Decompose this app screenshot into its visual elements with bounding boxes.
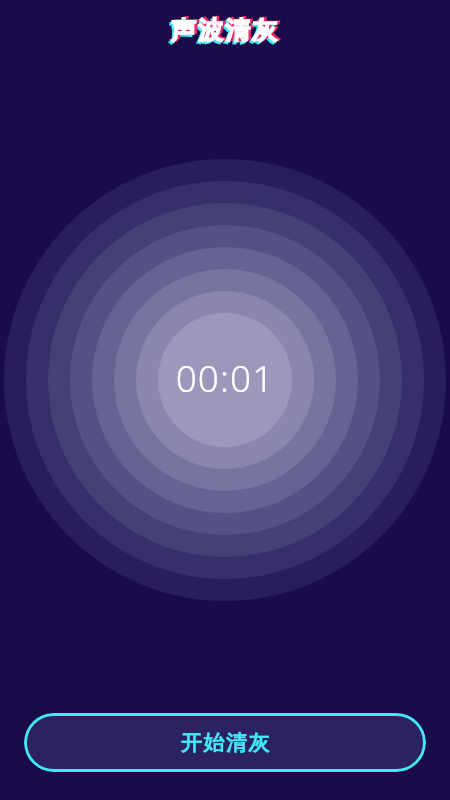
button[interactable]: 开始清灰: [24, 713, 426, 772]
staticText: 声波清灰: [3, 14, 450, 45]
staticText: 声波清灰: [0, 17, 448, 48]
staticText: 声波清灰: [0, 15, 450, 46]
staticText: 00:01: [0, 352, 450, 402]
staticText: 开始清灰: [180, 730, 270, 756]
